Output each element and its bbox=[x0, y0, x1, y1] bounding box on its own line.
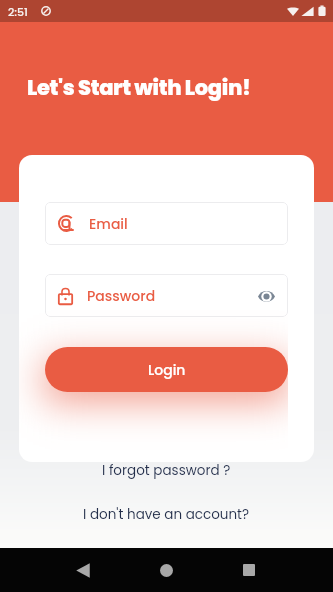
button[interactable]: Login bbox=[45, 347, 288, 392]
button[interactable]: Recent apps bbox=[226, 548, 272, 592]
staticText: Email bbox=[89, 214, 128, 234]
button[interactable]: Password bbox=[45, 274, 288, 317]
staticText: 2:51 bbox=[8, 4, 28, 19]
button[interactable]: Home bbox=[143, 548, 189, 592]
staticText: Login bbox=[148, 360, 186, 380]
button[interactable]: I forgot password ? bbox=[0, 456, 333, 484]
staticText: I forgot password ? bbox=[102, 461, 231, 480]
button[interactable]: Email bbox=[45, 202, 288, 245]
staticText: I don't have an account? bbox=[83, 505, 250, 524]
staticText: Let's Start with Login! bbox=[27, 73, 251, 102]
button[interactable]: Show password bbox=[253, 283, 279, 309]
staticText: Password bbox=[87, 286, 156, 306]
button[interactable]: I don't have an account? bbox=[0, 500, 333, 528]
button[interactable]: Back bbox=[60, 548, 106, 592]
